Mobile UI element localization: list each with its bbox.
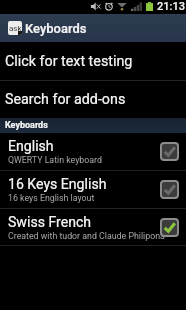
staticText: Swiss French xyxy=(8,214,92,231)
staticText: Keyboards xyxy=(25,21,87,36)
staticText: 21:13 xyxy=(157,0,185,13)
staticText: Keyboards xyxy=(5,120,48,131)
button[interactable]: Search for add-ons xyxy=(0,81,186,118)
button[interactable]: 16 Keys English xyxy=(0,171,186,208)
staticText: ask xyxy=(9,24,22,33)
other: Disabled xyxy=(160,180,179,199)
staticText: Click for text testing xyxy=(5,53,133,70)
staticText: Search for add-ons xyxy=(5,91,126,108)
staticText: English xyxy=(8,138,54,155)
other: Enabled xyxy=(160,218,179,237)
button[interactable]: Swiss French xyxy=(0,209,186,245)
button[interactable]: English xyxy=(0,133,186,170)
staticText: QWERTY Latin keyboard xyxy=(8,155,102,165)
staticText: 16 Keys English xyxy=(8,176,107,193)
other: Disabled xyxy=(160,142,179,161)
button[interactable]: Click for text testing xyxy=(0,42,186,80)
staticText: 16 keys English layout xyxy=(8,193,95,203)
staticText: Created with tudor and Claude Philipona xyxy=(8,231,165,241)
